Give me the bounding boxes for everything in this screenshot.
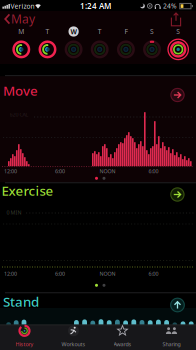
- staticText: M: [18, 27, 24, 36]
- button[interactable]: Share: [0, 0, 196, 30]
- button[interactable]: Workouts: [0, 0, 49, 25]
- staticText: F: [124, 27, 127, 36]
- button[interactable]: Sharing: [0, 0, 49, 25]
- staticText: T: [98, 27, 102, 36]
- button[interactable]: F activity rings: [113, 26, 139, 64]
- staticText: 0 MIN: [6, 209, 21, 216]
- staticText: 12:00: [4, 270, 17, 277]
- staticText: Move: [3, 82, 38, 99]
- button[interactable]: T activity rings: [34, 26, 61, 64]
- button[interactable]: M activity rings: [8, 26, 34, 64]
- staticText: 6:00: [148, 168, 158, 175]
- button[interactable]: Move details: [0, 0, 196, 110]
- staticText: 24%: [163, 2, 177, 10]
- staticText: Awards: [113, 341, 131, 348]
- button[interactable]: Stand details: [0, 0, 196, 320]
- staticText: Stand: [3, 293, 39, 310]
- staticText: 12:00: [4, 168, 17, 175]
- staticText: 1:24 AM: [80, 1, 111, 11]
- button[interactable]: S activity rings: [165, 26, 191, 64]
- staticText: T: [45, 27, 49, 36]
- button[interactable]: S activity rings: [139, 26, 165, 64]
- staticText: Exercise: [1, 182, 53, 199]
- button[interactable]: History: [0, 0, 49, 25]
- staticText: W: [71, 27, 77, 36]
- staticText: 6:00: [55, 270, 65, 277]
- staticText: 6:00: [148, 270, 158, 277]
- staticText: NOON: [99, 168, 115, 175]
- button[interactable]: T activity rings: [87, 26, 113, 64]
- button[interactable]: W activity rings: [60, 26, 87, 64]
- staticText: 620 CAL: [9, 111, 28, 118]
- staticText: History: [15, 341, 33, 348]
- staticText: 6:00: [55, 168, 65, 175]
- staticText: Verizon: [10, 2, 34, 11]
- button[interactable]: Back to May: [0, 0, 36, 26]
- staticText: S: [176, 27, 180, 36]
- staticText: May: [11, 11, 35, 27]
- staticText: S: [150, 27, 154, 36]
- staticText: Workouts: [61, 341, 85, 348]
- button[interactable]: Awards: [0, 0, 49, 25]
- staticText: NOON: [99, 270, 115, 277]
- staticText: Sharing: [162, 341, 180, 348]
- button[interactable]: Exercise details: [0, 0, 196, 210]
